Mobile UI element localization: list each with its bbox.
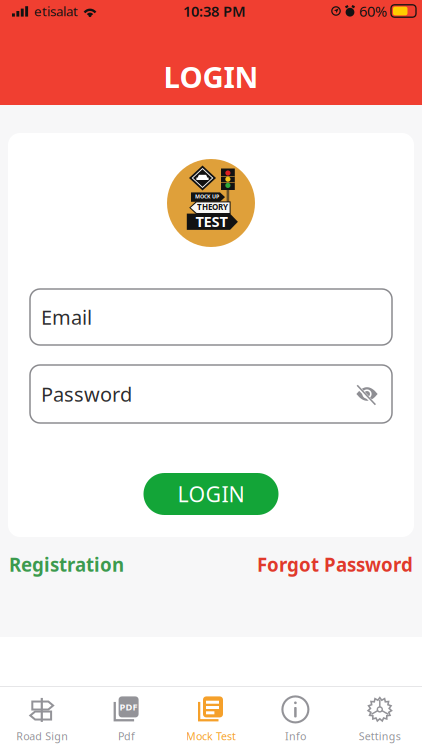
button[interactable]: PDF <box>84 688 169 749</box>
button[interactable]: Settings <box>338 688 422 749</box>
staticText: 10:38 PM <box>183 1 246 21</box>
button[interactable]: LOGIN <box>143 473 278 515</box>
staticText: MOCK UP <box>195 193 219 200</box>
staticText: Password <box>41 381 132 407</box>
button[interactable]: Forgot Password <box>257 552 413 577</box>
staticText: Settings <box>359 729 401 743</box>
button[interactable]: Show password <box>356 385 378 403</box>
staticText: Forgot Password <box>257 552 413 577</box>
staticText: LOGIN <box>177 480 244 508</box>
button[interactable]: Info <box>253 688 338 749</box>
staticText: Pdf <box>118 729 135 743</box>
staticText: Mock Test <box>186 729 236 743</box>
staticText: etisalat <box>34 2 78 20</box>
button[interactable]: Road Sign <box>0 688 84 749</box>
staticText: Email <box>41 304 92 330</box>
button[interactable]: Mock Test <box>169 688 253 749</box>
staticText: TEST <box>195 211 227 231</box>
staticText: 60% <box>359 1 387 21</box>
button[interactable]: Registration <box>9 552 124 577</box>
staticText: Info <box>285 729 306 743</box>
staticText: LOGIN <box>163 57 258 96</box>
staticText: Road Sign <box>16 729 68 743</box>
staticText: THEORY <box>197 202 228 212</box>
staticText: Registration <box>9 552 124 577</box>
staticText: PDF <box>120 701 138 713</box>
